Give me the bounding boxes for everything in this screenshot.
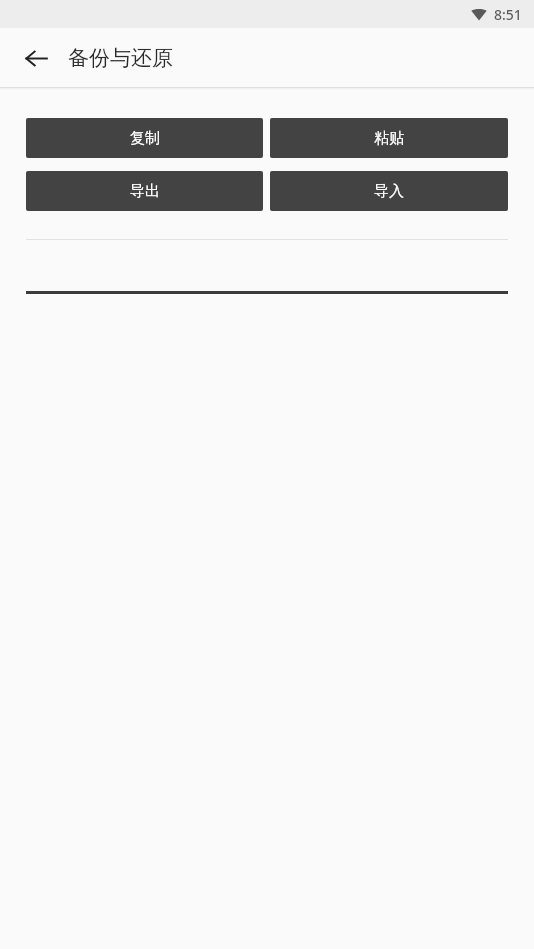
staticText: 备份与还原 xyxy=(68,45,173,71)
staticText: 粘贴 xyxy=(374,129,404,148)
staticText: 复制 xyxy=(130,129,160,148)
button[interactable]: 导出 xyxy=(26,171,263,211)
staticText: 导出 xyxy=(130,182,160,201)
staticText: 导入 xyxy=(374,182,404,201)
button[interactable]: 复制 xyxy=(26,118,263,158)
button[interactable]: 粘贴 xyxy=(270,118,508,158)
button[interactable]: Back xyxy=(14,36,58,80)
staticText: 8:51 xyxy=(494,5,522,24)
button[interactable]: 导入 xyxy=(270,171,508,211)
